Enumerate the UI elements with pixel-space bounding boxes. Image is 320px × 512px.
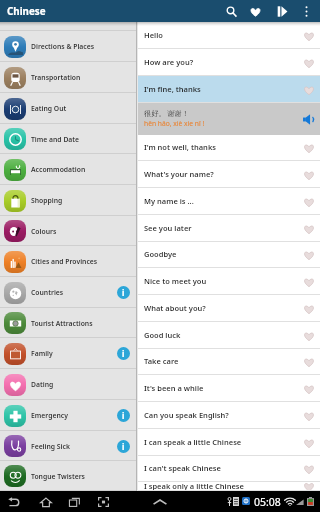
staticText: Dating (31, 380, 130, 389)
button[interactable]: Time and Date (0, 124, 136, 154)
button[interactable]: Nice to meet you (138, 268, 320, 295)
button[interactable]: Goodbye (138, 242, 320, 268)
button[interactable]: It's been a while (138, 375, 320, 402)
staticText: Shopping (31, 196, 130, 205)
button[interactable]: Add to favourites (301, 55, 317, 71)
staticText: i (122, 441, 125, 452)
button[interactable]: Screenshot (95, 496, 111, 508)
button[interactable]: Eating Out (0, 93, 136, 124)
button[interactable]: Add to favourites (301, 28, 317, 44)
staticText: Eating Out (31, 104, 130, 113)
staticText: Transportation (31, 73, 130, 82)
button[interactable]: Good luck (138, 322, 320, 349)
staticText: Colours (31, 227, 130, 236)
button[interactable]: Show menu (152, 496, 168, 508)
staticText: Goodbye (144, 249, 177, 259)
staticText: What's your name? (144, 169, 214, 179)
button[interactable]: Emergency (0, 400, 136, 431)
button[interactable]: Tourist Attractions (0, 308, 136, 338)
button[interactable]: Cities and Provinces (0, 246, 136, 277)
button[interactable]: Transportation (0, 62, 136, 93)
button[interactable]: Add to favourites (301, 82, 317, 98)
staticText: I'm fine, thanks (144, 84, 201, 94)
staticText: Countries (31, 288, 117, 297)
button[interactable]: Add to favourites (301, 140, 317, 156)
button[interactable]: Dating (0, 369, 136, 400)
button[interactable]: My name is ... (138, 188, 320, 215)
button[interactable]: Hello (138, 22, 320, 49)
staticText: It's been a while (144, 383, 204, 393)
button[interactable]: Shopping (0, 185, 136, 216)
button[interactable]: Colours (0, 216, 136, 246)
staticText: Hello (144, 30, 163, 40)
button[interactable]: I'm fine, thanks (138, 76, 320, 103)
button[interactable]: Search (220, 0, 242, 22)
staticText: Directions & Places (31, 42, 130, 51)
staticText: My name is ... (144, 196, 194, 206)
button[interactable]: Countries (0, 277, 136, 308)
button[interactable]: Add to favourites (301, 482, 317, 491)
button[interactable]: Take care (138, 349, 320, 375)
button[interactable]: How are you? (138, 49, 320, 76)
staticText: i (122, 287, 125, 298)
button[interactable]: Favourites (244, 0, 266, 22)
button[interactable]: Directions & Places (0, 31, 136, 62)
button[interactable]: Home (38, 496, 54, 508)
button[interactable]: Add to favourites (301, 408, 317, 424)
staticText: Good luck (144, 330, 181, 340)
button[interactable]: See you later (138, 215, 320, 242)
button[interactable]: I can't speak Chinese (138, 456, 320, 482)
button[interactable]: Add to favourites (301, 221, 317, 237)
button[interactable]: Add to favourites (301, 301, 317, 317)
staticText: 05:08 (254, 495, 281, 509)
staticText: Tourist Attractions (31, 319, 130, 328)
staticText: Cities and Provinces (31, 257, 130, 266)
staticText: Time and Date (31, 135, 130, 144)
button[interactable]: What about you? (138, 295, 320, 322)
button[interactable]: Add to favourites (301, 435, 317, 451)
staticText: i (122, 348, 125, 359)
button[interactable]: Add to favourites (301, 328, 317, 344)
button[interactable]: Can you speak English? (138, 402, 320, 429)
button[interactable]: I can speak a little Chinese (138, 429, 320, 456)
staticText: Take care (144, 356, 179, 366)
button[interactable]: Tongue Twisters (0, 461, 136, 491)
staticText: I can speak a little Chinese (144, 437, 242, 447)
button[interactable]: Family (0, 338, 136, 369)
staticText: Family (31, 349, 117, 358)
button[interactable]: Play audio (299, 110, 317, 128)
staticText: I speak only a little Chinese (144, 481, 244, 490)
staticText: What about you? (144, 303, 206, 313)
button[interactable]: 很好。 谢谢！ (138, 103, 320, 135)
staticText: Emergency (31, 411, 117, 420)
button[interactable]: Add to favourites (301, 461, 317, 477)
button[interactable] (0, 22, 136, 31)
button[interactable]: Back (6, 496, 22, 508)
button[interactable]: What's your name? (138, 161, 320, 188)
button[interactable]: Add to favourites (301, 247, 317, 263)
button[interactable]: Add to favourites (301, 354, 317, 370)
staticText: Nice to meet you (144, 276, 207, 286)
button[interactable]: More options (296, 0, 316, 22)
staticText: How are you? (144, 57, 194, 67)
staticText: Accommodation (31, 165, 130, 174)
button[interactable]: Add to favourites (301, 381, 317, 397)
staticText: Tongue Twisters (31, 472, 130, 481)
staticText: Chinese (7, 5, 46, 18)
button[interactable]: Add to favourites (301, 167, 317, 183)
button[interactable]: Recent apps (66, 496, 82, 508)
button[interactable]: Play all (271, 0, 293, 22)
button[interactable]: Feeling Sick (0, 431, 136, 461)
staticText: Can you speak English? (144, 410, 229, 420)
staticText: Feeling Sick (31, 442, 117, 451)
button[interactable]: Accommodation (0, 154, 136, 185)
staticText: See you later (144, 223, 192, 233)
staticText: hěn hǎo, xiè xie nǐ ! (144, 119, 205, 128)
button[interactable]: Add to favourites (301, 194, 317, 210)
staticText: I'm not well, thanks (144, 142, 216, 152)
button[interactable]: Add to favourites (301, 274, 317, 290)
button[interactable]: I speak only a little Chinese (138, 482, 320, 491)
staticText: i (122, 410, 125, 421)
button[interactable]: I'm not well, thanks (138, 135, 320, 161)
staticText: I can't speak Chinese (144, 463, 221, 473)
